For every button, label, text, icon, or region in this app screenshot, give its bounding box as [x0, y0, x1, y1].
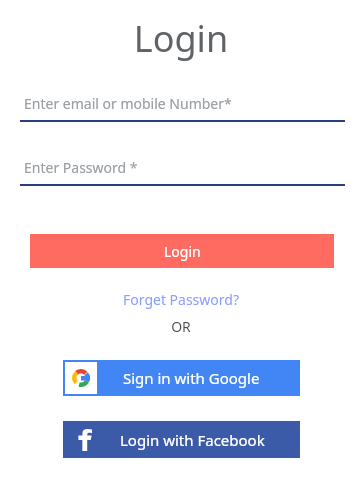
other: Facebook logo [74, 429, 96, 451]
other: Google logo [72, 369, 90, 387]
button[interactable]: Facebook logo [63, 421, 300, 458]
button[interactable]: Enter email or mobile Number* [20, 94, 345, 122]
staticText: OR [0, 317, 362, 336]
staticText: Enter Password * [24, 158, 138, 177]
staticText: Login [0, 14, 362, 63]
staticText: Forget Password? [123, 290, 239, 309]
staticText: Login [164, 242, 201, 261]
button[interactable]: Forget Password? [117, 288, 245, 311]
button[interactable]: Enter Password * [20, 158, 345, 186]
button[interactable]: Google logo [63, 360, 300, 396]
staticText: Sign in with Google [123, 368, 260, 388]
button[interactable]: Login [30, 234, 334, 268]
staticText: Enter email or mobile Number* [24, 94, 232, 113]
staticText: Login with Facebook [120, 430, 265, 450]
